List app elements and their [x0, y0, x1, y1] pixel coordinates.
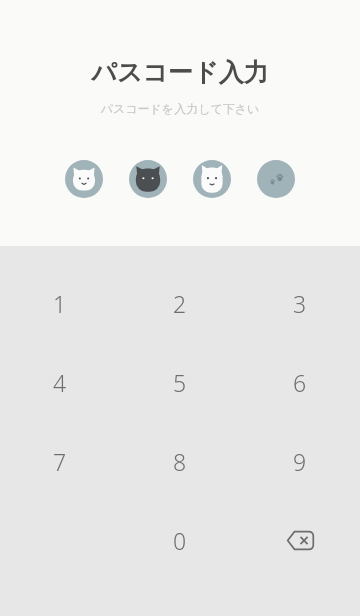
- staticText: パスコード入力: [0, 57, 360, 88]
- staticText: 6: [293, 367, 307, 398]
- button[interactable]: 6: [240, 343, 360, 422]
- button[interactable]: Backspace: [240, 501, 360, 580]
- button[interactable]: 9: [240, 422, 360, 501]
- button[interactable]: 0: [120, 501, 240, 580]
- button[interactable]: 3: [240, 264, 360, 343]
- button[interactable]: 5: [120, 343, 240, 422]
- button[interactable]: 1: [0, 264, 120, 343]
- button[interactable]: 2: [120, 264, 240, 343]
- staticText: 2: [173, 288, 187, 319]
- staticText: 1: [53, 288, 67, 319]
- button[interactable]: Passcode digit 4: [257, 160, 295, 198]
- button[interactable]: Passcode digit 2: [129, 160, 167, 198]
- button[interactable]: Passcode digit 1: [65, 160, 103, 198]
- staticText: 3: [293, 288, 307, 319]
- staticText: 4: [53, 367, 67, 398]
- staticText: 5: [173, 367, 187, 398]
- button[interactable]: Passcode digit 3: [193, 160, 231, 198]
- staticText: 7: [53, 446, 67, 477]
- staticText: パスコードを入力して下さい: [0, 101, 360, 116]
- staticText: 9: [293, 446, 307, 477]
- staticText: 0: [173, 525, 187, 556]
- button[interactable]: 8: [120, 422, 240, 501]
- staticText: 8: [173, 446, 187, 477]
- button[interactable]: 4: [0, 343, 120, 422]
- button[interactable]: 7: [0, 422, 120, 501]
